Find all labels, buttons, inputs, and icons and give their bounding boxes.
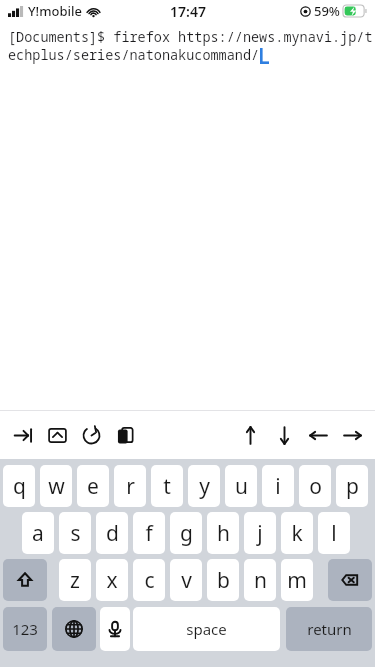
- staticText: Y!mobile: [28, 2, 82, 20]
- button[interactable]: Tab: [6, 418, 40, 452]
- button[interactable]: Arrow down: [267, 418, 301, 452]
- staticText: return: [307, 619, 352, 639]
- staticText: n: [254, 566, 267, 595]
- button[interactable]: Control key: [40, 418, 74, 452]
- button[interactable]: y: [188, 465, 220, 507]
- staticText: h: [217, 519, 230, 548]
- button[interactable]: space: [133, 607, 280, 651]
- staticText: 59%: [314, 2, 340, 20]
- button[interactable]: v: [170, 559, 202, 601]
- button[interactable]: h: [207, 512, 239, 554]
- button[interactable]: Arrow right: [335, 418, 369, 452]
- staticText: q: [13, 472, 26, 501]
- button[interactable]: r: [114, 465, 146, 507]
- staticText: t: [163, 472, 171, 501]
- button[interactable]: f: [133, 512, 165, 554]
- button[interactable]: n: [244, 559, 276, 601]
- staticText: o: [309, 472, 322, 501]
- button[interactable]: q: [3, 465, 35, 507]
- staticText: a: [32, 519, 44, 548]
- button[interactable]: x: [96, 559, 128, 601]
- staticText: k: [291, 519, 303, 548]
- staticText: 123: [12, 619, 38, 639]
- button[interactable]: Switch keyboard: [52, 607, 96, 651]
- button[interactable]: k: [281, 512, 313, 554]
- button[interactable]: History: [74, 418, 108, 452]
- staticText: echplus/series/natonakucommand/: [8, 46, 260, 64]
- button[interactable]: d: [96, 512, 128, 554]
- button[interactable]: w: [40, 465, 72, 507]
- button[interactable]: Arrow left: [301, 418, 335, 452]
- button[interactable]: o: [299, 465, 331, 507]
- button[interactable]: p: [336, 465, 368, 507]
- button[interactable]: b: [207, 559, 239, 601]
- button[interactable]: Paste: [108, 418, 142, 452]
- staticText: p: [346, 472, 359, 501]
- button[interactable]: s: [59, 512, 91, 554]
- staticText: y: [199, 472, 210, 501]
- button[interactable]: m: [281, 559, 313, 601]
- button[interactable]: i: [262, 465, 294, 507]
- button[interactable]: a: [22, 512, 54, 554]
- button[interactable]: j: [244, 512, 276, 554]
- staticText: c: [144, 566, 155, 595]
- staticText: j: [257, 519, 263, 548]
- button[interactable]: 123: [3, 607, 47, 651]
- staticText: w: [48, 472, 65, 501]
- button[interactable]: g: [170, 512, 202, 554]
- staticText: [Documents]$ firefox https://news.mynavi…: [8, 28, 373, 46]
- staticText: z: [70, 566, 80, 595]
- staticText: i: [275, 472, 281, 501]
- button[interactable]: Backspace: [328, 559, 372, 601]
- staticText: space: [186, 619, 227, 639]
- button[interactable]: Arrow up: [233, 418, 267, 452]
- button[interactable]: t: [151, 465, 183, 507]
- staticText: v: [181, 566, 192, 595]
- button[interactable]: e: [77, 465, 109, 507]
- button[interactable]: c: [133, 559, 165, 601]
- button[interactable]: l: [318, 512, 350, 554]
- button[interactable]: return: [286, 607, 372, 651]
- staticText: 17:47: [170, 2, 206, 21]
- staticText: r: [126, 472, 135, 501]
- staticText: s: [70, 519, 81, 548]
- staticText: e: [87, 472, 99, 501]
- button[interactable]: Dictation: [100, 607, 130, 651]
- button[interactable]: Shift: [3, 559, 47, 601]
- staticText: g: [180, 519, 193, 548]
- staticText: f: [145, 519, 153, 548]
- staticText: b: [217, 566, 230, 595]
- button[interactable]: z: [59, 559, 91, 601]
- button[interactable]: u: [225, 465, 257, 507]
- staticText: l: [331, 519, 337, 548]
- staticText: d: [106, 519, 119, 548]
- staticText: u: [235, 472, 248, 501]
- staticText: m: [287, 566, 307, 595]
- staticText: x: [106, 566, 118, 595]
